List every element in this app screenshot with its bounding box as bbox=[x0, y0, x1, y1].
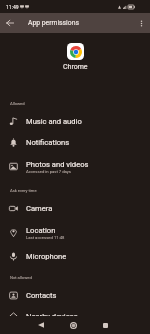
staticText: Nearby devices bbox=[26, 312, 78, 321]
staticText: Notifications bbox=[26, 138, 70, 147]
button[interactable]: Camera bbox=[0, 198, 150, 219]
staticText: Chrome bbox=[63, 63, 88, 71]
staticText: Music and audio bbox=[26, 117, 82, 126]
button[interactable]: Recents bbox=[96, 316, 114, 334]
staticText: Location bbox=[26, 226, 56, 235]
button[interactable]: Photos and videos bbox=[0, 153, 150, 180]
staticText: Allowed bbox=[10, 101, 25, 106]
staticText: Contacts bbox=[26, 291, 57, 300]
button[interactable]: More options bbox=[132, 13, 150, 33]
staticText: Camera bbox=[26, 204, 53, 213]
button[interactable]: Back bbox=[32, 316, 50, 334]
button[interactable]: Contacts bbox=[0, 285, 150, 306]
button[interactable]: Music and audio bbox=[0, 111, 150, 132]
staticText: Accessed in past 7 days bbox=[26, 169, 71, 174]
staticText: Photos and videos bbox=[26, 160, 89, 169]
staticText: Microphone bbox=[26, 252, 67, 261]
button[interactable]: Nearby devices bbox=[0, 306, 150, 327]
button[interactable]: Microphone bbox=[0, 246, 150, 267]
button[interactable]: Back bbox=[0, 13, 20, 33]
button[interactable]: Home bbox=[64, 316, 82, 334]
button[interactable]: Notifications bbox=[0, 132, 150, 153]
button[interactable]: Location bbox=[0, 219, 150, 246]
staticText: Last accessed 11:48 bbox=[26, 235, 65, 240]
staticText: 11:49 bbox=[6, 4, 19, 10]
staticText: Ask every time bbox=[10, 188, 37, 193]
staticText: App permissions bbox=[28, 19, 79, 27]
staticText: Not allowed bbox=[10, 275, 32, 280]
